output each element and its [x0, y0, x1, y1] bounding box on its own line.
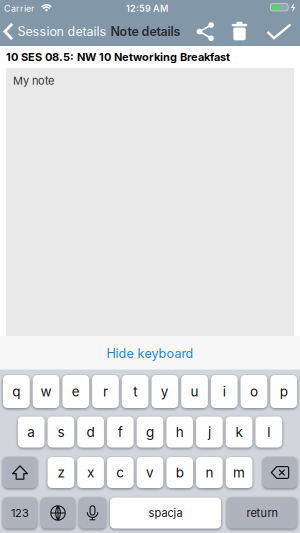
button[interactable]: w: [33, 375, 59, 408]
button[interactable]: f: [107, 416, 134, 447]
button[interactable]: e: [62, 375, 89, 408]
staticText: p: [280, 383, 288, 400]
staticText: t: [133, 383, 137, 400]
button[interactable]: a: [18, 416, 45, 447]
staticText: g: [146, 424, 154, 440]
staticText: Session details: [17, 24, 106, 39]
button[interactable]: [3, 457, 37, 488]
staticText: o: [250, 383, 258, 400]
button[interactable]: b: [166, 457, 193, 488]
button[interactable]: [263, 457, 297, 488]
button[interactable]: q: [3, 375, 30, 408]
button[interactable]: spacja: [110, 497, 221, 528]
staticText: n: [205, 464, 213, 481]
staticText: l: [267, 424, 270, 440]
staticText: f: [118, 424, 123, 440]
staticText: q: [12, 383, 20, 400]
button[interactable]: m: [226, 457, 252, 488]
button[interactable]: z: [47, 457, 74, 488]
staticText: Carrier: [4, 3, 34, 14]
button[interactable]: r: [92, 375, 119, 408]
button[interactable]: return: [227, 497, 297, 528]
button[interactable]: y: [151, 375, 178, 408]
staticText: k: [236, 424, 243, 440]
button[interactable]: x: [77, 457, 104, 488]
staticText: e: [72, 383, 80, 400]
staticText: i: [223, 383, 226, 400]
staticText: s: [57, 424, 64, 440]
button[interactable]: Hide keyboard: [85, 341, 215, 365]
button[interactable]: [41, 497, 75, 528]
staticText: 123: [11, 506, 29, 520]
staticText: w: [41, 383, 52, 400]
staticText: c: [116, 464, 124, 481]
button[interactable]: j: [196, 416, 223, 447]
button[interactable]: [264, 18, 294, 44]
button[interactable]: k: [226, 416, 252, 447]
button[interactable]: [192, 18, 218, 44]
staticText: j: [208, 424, 211, 440]
staticText: spacja: [148, 506, 182, 520]
staticText: a: [27, 424, 35, 440]
button[interactable]: n: [196, 457, 223, 488]
staticText: d: [87, 424, 95, 440]
staticText: 12:59 AM: [126, 3, 168, 14]
staticText: r: [103, 383, 108, 400]
staticText: u: [191, 383, 199, 400]
button[interactable]: u: [181, 375, 208, 408]
button[interactable]: i: [211, 375, 238, 408]
button[interactable]: h: [166, 416, 193, 447]
button[interactable]: My note: [6, 68, 294, 336]
button[interactable]: Session details: [3, 15, 106, 47]
staticText: My note: [13, 74, 54, 87]
button[interactable]: c: [107, 457, 134, 488]
staticText: y: [161, 383, 169, 400]
staticText: 10 SES 08.5: NW 10 Networking Breakfast: [6, 50, 230, 64]
button[interactable]: p: [270, 375, 297, 408]
staticText: Note details: [110, 24, 180, 39]
staticText: x: [87, 464, 94, 481]
button[interactable]: g: [137, 416, 163, 447]
button[interactable]: l: [255, 416, 282, 447]
button[interactable]: o: [241, 375, 267, 408]
button[interactable]: v: [137, 457, 163, 488]
button[interactable]: d: [77, 416, 104, 447]
button[interactable]: [79, 497, 106, 528]
staticText: v: [146, 464, 154, 481]
staticText: b: [176, 464, 184, 481]
button[interactable]: t: [122, 375, 148, 408]
staticText: h: [176, 424, 184, 440]
staticText: Hide keyboard: [106, 346, 193, 361]
staticText: return: [246, 506, 277, 520]
staticText: m: [233, 464, 245, 481]
button[interactable]: 123: [3, 497, 37, 528]
button[interactable]: [226, 18, 252, 44]
button[interactable]: s: [48, 416, 74, 447]
staticText: z: [57, 464, 64, 481]
